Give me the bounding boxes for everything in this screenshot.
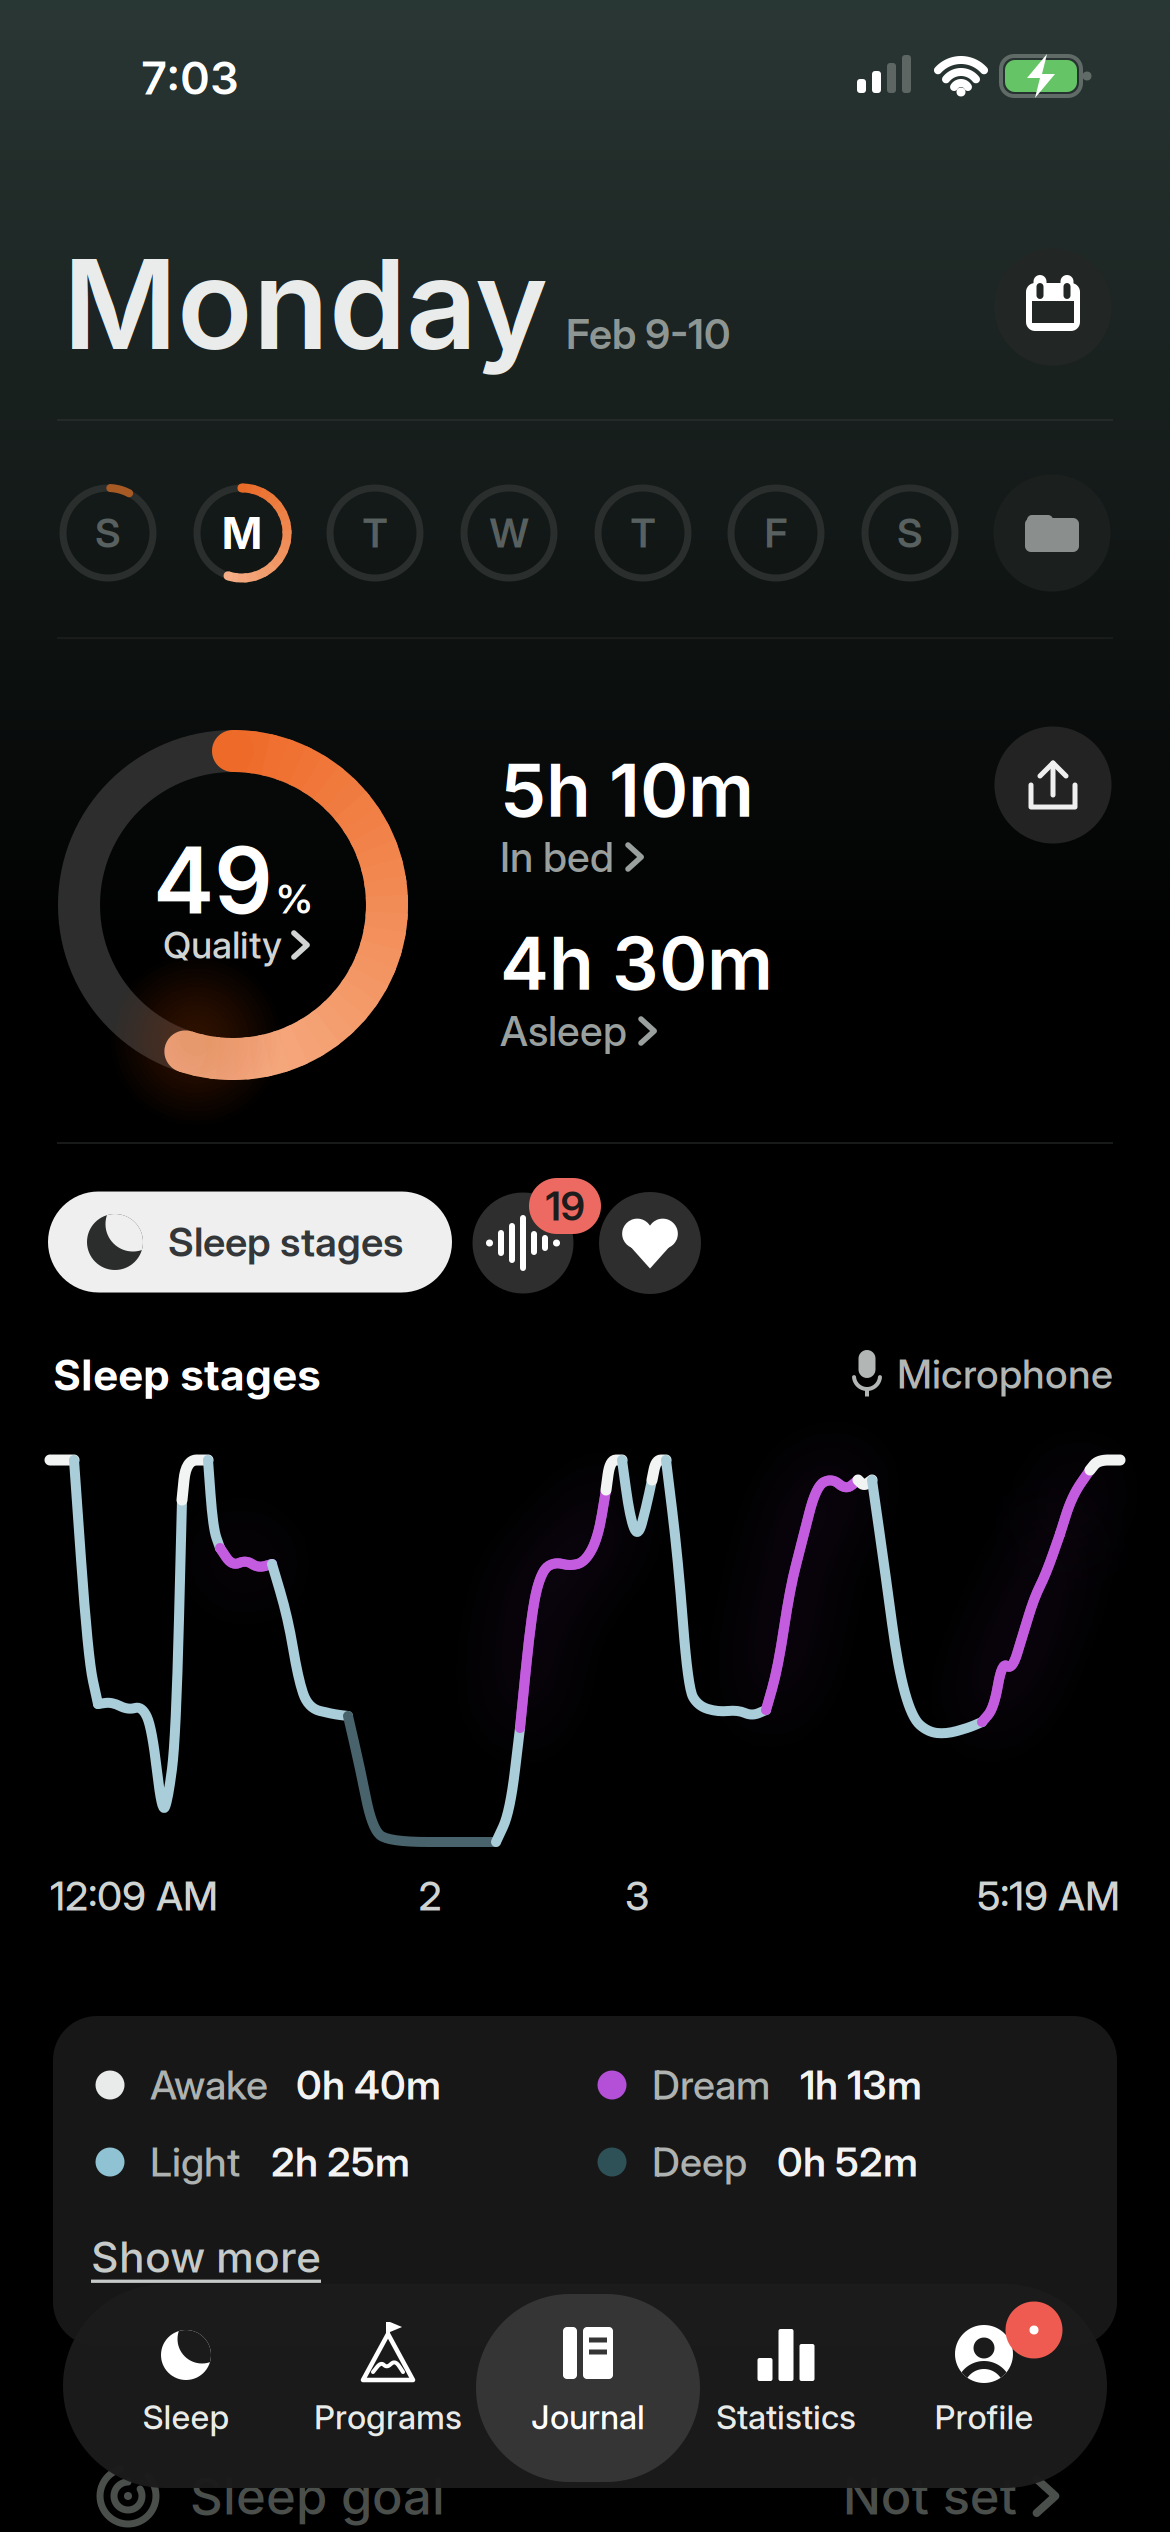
button[interactable]: W: [461, 485, 557, 581]
staticText: 7:03: [141, 51, 239, 105]
button[interactable]: T: [327, 485, 423, 581]
button[interactable]: Heart rate: [599, 1192, 701, 1294]
staticText: 5h 10m: [500, 747, 754, 833]
button[interactable]: S: [862, 485, 958, 581]
staticText: In bed: [500, 833, 614, 881]
button[interactable]: 49: [117, 800, 347, 970]
staticText: T: [362, 509, 387, 557]
staticText: S: [95, 509, 121, 557]
staticText: Journal: [531, 2397, 645, 2437]
staticText: Asleep: [500, 1007, 627, 1055]
button[interactable]: Statistics: [691, 2301, 881, 2471]
button[interactable]: Archive: [993, 474, 1110, 591]
button[interactable]: Microphone: [853, 1350, 1113, 1398]
button[interactable]: Share: [994, 726, 1111, 843]
button[interactable]: M: [194, 485, 290, 581]
button[interactable]: Profile: [889, 2301, 1079, 2471]
button[interactable]: Calendar: [994, 248, 1111, 365]
staticText: Profile: [934, 2397, 1033, 2437]
button[interactable]: S: [60, 485, 156, 581]
staticText: Statistics: [716, 2397, 856, 2437]
staticText: Feb 9-10: [566, 310, 730, 358]
staticText: 49: [153, 826, 273, 934]
button[interactable]: Sound recordings: [472, 1192, 573, 1293]
staticText: Not set: [843, 2466, 1017, 2526]
staticText: Programs: [314, 2397, 462, 2437]
staticText: 5:19 AM: [977, 1872, 1120, 1920]
staticText: Quality: [163, 923, 282, 967]
staticText: Sleep goal: [190, 2466, 445, 2526]
staticText: F: [764, 509, 787, 557]
staticText: Sleep: [142, 2397, 229, 2437]
button[interactable]: 4h 30m: [500, 910, 920, 1076]
staticText: 0h 40m: [296, 2061, 441, 2109]
staticText: 19: [545, 1182, 584, 1230]
button[interactable]: Sleep stages: [48, 1191, 452, 1292]
staticText: 3: [625, 1872, 649, 1920]
staticText: T: [630, 509, 655, 557]
staticText: W: [489, 509, 528, 557]
staticText: Microphone: [897, 1350, 1113, 1398]
staticText: Light: [150, 2138, 240, 2186]
staticText: 1h 13m: [800, 2061, 922, 2109]
staticText: Sleep stages: [53, 1350, 321, 1400]
staticText: Monday: [63, 231, 548, 377]
button[interactable]: Programs: [293, 2301, 483, 2471]
staticText: Show more: [91, 2232, 321, 2282]
button[interactable]: Show more: [91, 2232, 321, 2282]
staticText: 4h 30m: [500, 920, 773, 1006]
staticText: S: [897, 509, 923, 557]
staticText: 2h 25m: [271, 2138, 410, 2186]
staticText: Deep: [652, 2138, 747, 2186]
staticText: 2: [418, 1872, 441, 1920]
button[interactable]: T: [595, 485, 691, 581]
button[interactable]: 5h 10m: [500, 737, 920, 903]
staticText: 12:09 AM: [50, 1872, 218, 1920]
button[interactable]: Sleep: [91, 2301, 281, 2471]
staticText: %: [276, 875, 313, 922]
staticText: Sleep stages: [168, 1218, 403, 1266]
staticText: Awake: [150, 2061, 268, 2109]
staticText: Dream: [652, 2061, 770, 2109]
button[interactable]: F: [728, 485, 824, 581]
button[interactable]: Journal: [488, 2301, 688, 2471]
staticText: M: [221, 507, 262, 559]
staticText: 0h 52m: [777, 2138, 918, 2186]
button[interactable]: Sleep goal: [53, 2451, 1117, 2532]
